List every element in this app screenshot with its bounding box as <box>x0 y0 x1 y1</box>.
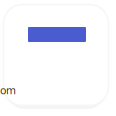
staticText: om <box>0 83 16 97</box>
